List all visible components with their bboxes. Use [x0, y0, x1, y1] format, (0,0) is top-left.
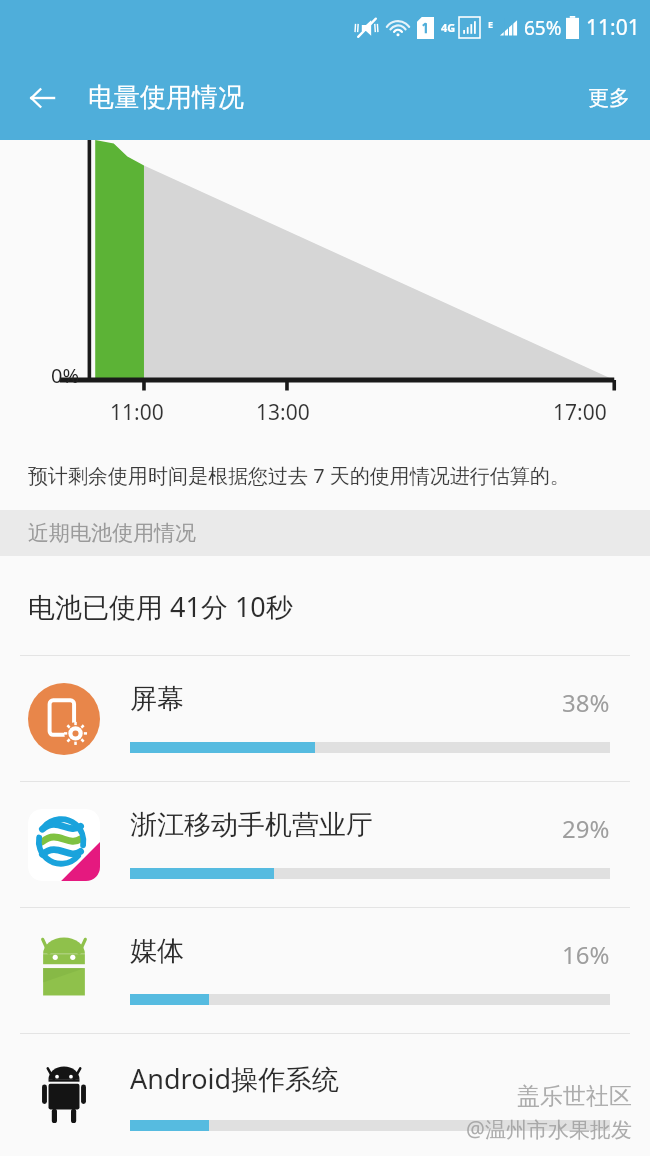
- button[interactable]: 浙江移动手机营业厅: [0, 782, 650, 907]
- button[interactable]: Back: [14, 70, 70, 126]
- button[interactable]: Android操作系统: [0, 1034, 650, 1156]
- staticText: 盖乐世社区: [517, 1082, 632, 1111]
- staticText: 17:00: [553, 398, 607, 427]
- staticText: 电量使用情况: [88, 81, 244, 114]
- staticText: 65%: [524, 15, 562, 41]
- staticText: E: [488, 18, 494, 30]
- staticText: 16%: [562, 938, 610, 971]
- staticText: 近期电池使用情况: [28, 520, 196, 546]
- button[interactable]: 更多: [568, 71, 650, 125]
- staticText: 29%: [562, 812, 610, 845]
- staticText: 媒体: [130, 934, 184, 968]
- staticText: 浙江移动手机营业厅: [130, 808, 373, 842]
- staticText: 预计剩余使用时间是根据您过去 7 天的使用情况进行估算的。: [28, 462, 570, 489]
- staticText: 0%: [51, 362, 80, 389]
- staticText: @温州市水果批发: [466, 1115, 632, 1144]
- staticText: 13:00: [256, 398, 310, 427]
- staticText: 4G: [441, 20, 456, 35]
- staticText: 屏幕: [130, 682, 184, 716]
- staticText: Android操作系统: [130, 1060, 340, 1097]
- staticText: 38%: [562, 686, 610, 719]
- staticText: 电池已使用 41分 10秒: [28, 588, 293, 625]
- staticText: 11:01: [586, 13, 640, 42]
- staticText: 11:00: [110, 398, 164, 427]
- button[interactable]: 屏幕: [0, 656, 650, 781]
- staticText: 更多: [588, 85, 630, 111]
- button[interactable]: 媒体: [0, 908, 650, 1033]
